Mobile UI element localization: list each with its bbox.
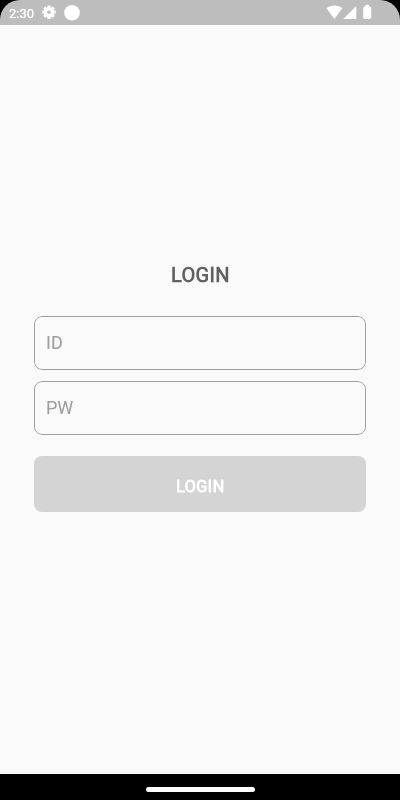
staticText: ID [46, 332, 63, 353]
staticText: LOGIN [176, 477, 225, 496]
button[interactable]: PW [34, 381, 366, 435]
button[interactable]: LOGIN [34, 456, 366, 512]
other: Home gesture bar [146, 787, 255, 792]
button[interactable]: ID [34, 316, 366, 370]
staticText: 2:30 [9, 6, 35, 21]
staticText: LOGIN [171, 263, 230, 286]
staticText: PW [46, 397, 74, 418]
